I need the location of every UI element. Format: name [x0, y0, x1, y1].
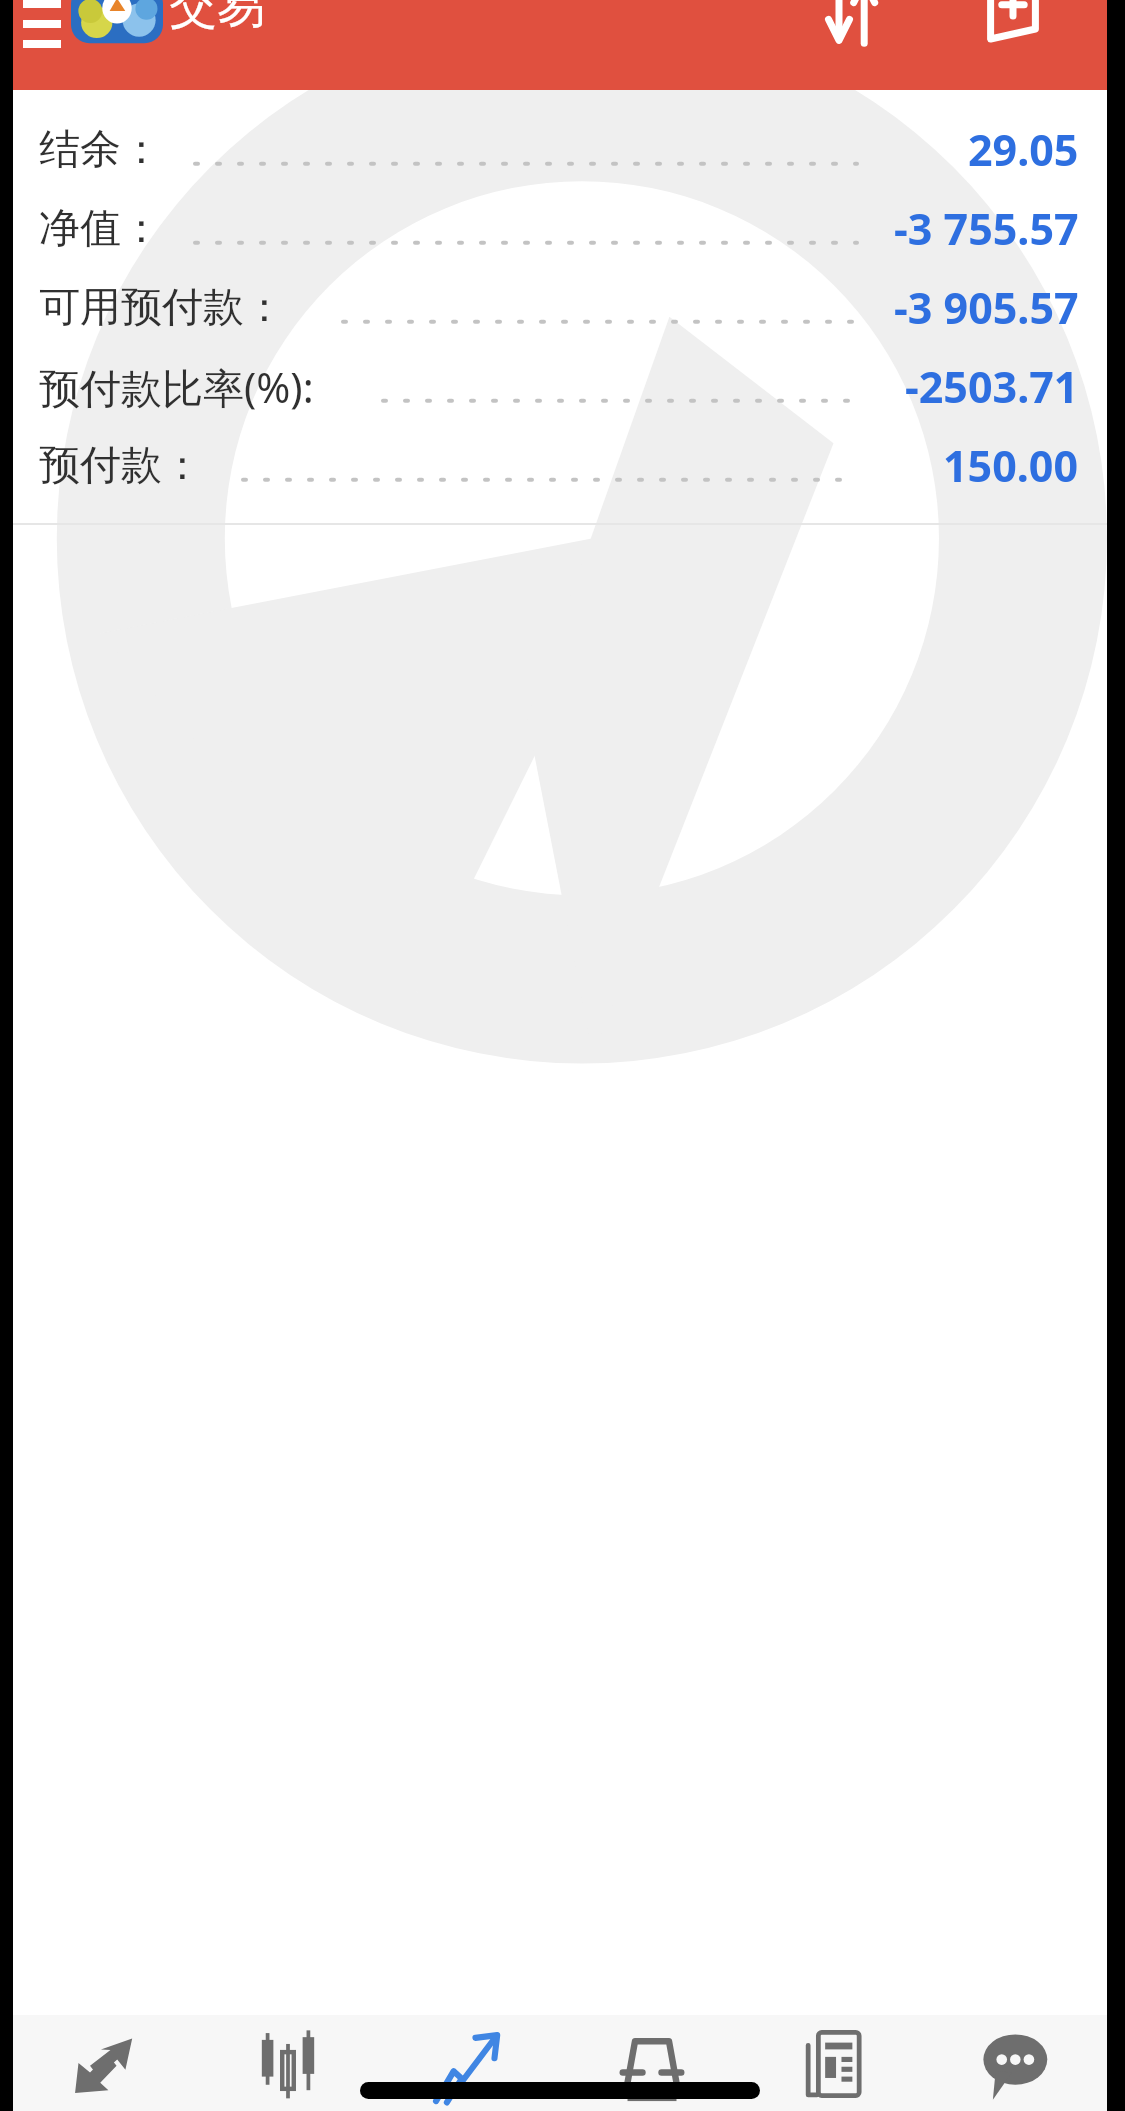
staticText: 交易: [169, 0, 265, 36]
staticText: 结余：: [39, 124, 162, 176]
button[interactable]: Trade: [379, 2015, 561, 2111]
staticText: 29.05: [968, 120, 1079, 179]
button[interactable]: 可用预付款：: [13, 268, 1107, 347]
staticText: 预付款比率(%):: [39, 359, 314, 415]
button[interactable]: Charts: [196, 2015, 379, 2111]
button[interactable]: Sort orders: [799, 0, 907, 56]
button[interactable]: Application: [71, 0, 163, 54]
staticText: -3 905.57: [894, 278, 1079, 337]
button[interactable]: 结余：: [13, 110, 1107, 189]
button[interactable]: Menu: [17, 0, 75, 60]
staticText: 净值：: [39, 203, 162, 255]
staticText: 150.00: [943, 436, 1079, 495]
staticText: 可用预付款：: [39, 282, 285, 334]
staticText: -2503.71: [905, 357, 1079, 416]
staticText: 预付款：: [39, 440, 203, 492]
button[interactable]: Messages: [925, 2015, 1107, 2111]
button[interactable]: 预付款比率(%):: [13, 347, 1107, 426]
button[interactable]: News: [743, 2015, 925, 2111]
button[interactable]: New order: [959, 0, 1067, 56]
button[interactable]: 净值：: [13, 189, 1107, 268]
button[interactable]: History: [561, 2015, 743, 2111]
button[interactable]: 预付款：: [13, 426, 1107, 505]
staticText: -3 755.57: [894, 199, 1079, 258]
button[interactable]: Quotes: [13, 2015, 196, 2111]
